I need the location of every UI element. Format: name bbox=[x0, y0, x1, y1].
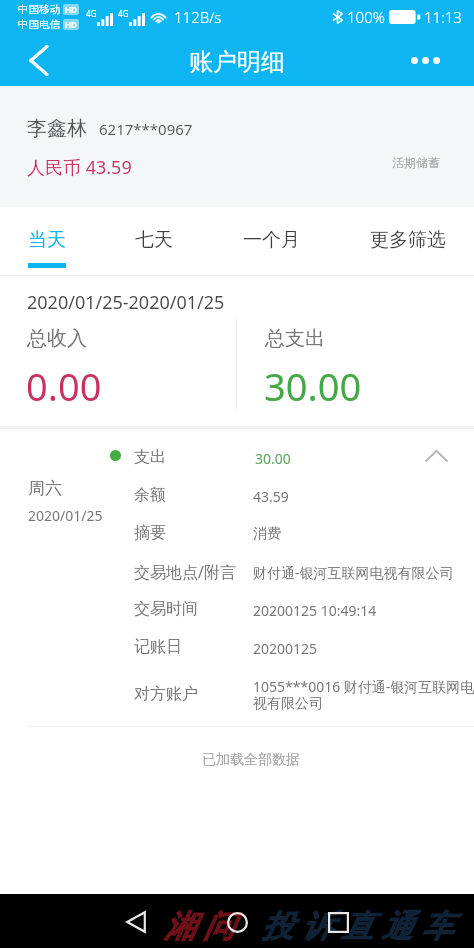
button[interactable]: Back bbox=[112, 898, 160, 946]
button[interactable]: More options bbox=[399, 34, 452, 86]
staticText: 投诉直通车 bbox=[257, 907, 457, 946]
staticText: 100% bbox=[347, 7, 385, 27]
staticText: 李鑫林 bbox=[27, 116, 87, 141]
staticText: 记账日 bbox=[134, 637, 182, 657]
staticText: 30.00 bbox=[255, 449, 291, 468]
staticText: 湘问 bbox=[160, 907, 238, 946]
button[interactable]: 一个月 bbox=[219, 207, 323, 276]
staticText: 20200125 10:49:14 bbox=[253, 601, 474, 620]
staticText: 0.00 bbox=[26, 360, 102, 412]
staticText: 112B/s bbox=[174, 7, 222, 27]
staticText: HD bbox=[65, 4, 77, 15]
staticText: 交易时间 bbox=[134, 599, 198, 619]
staticText: 总收入 bbox=[27, 326, 87, 351]
button[interactable]: 七天 bbox=[102, 207, 206, 276]
button[interactable]: Collapse bbox=[416, 438, 456, 474]
button[interactable] bbox=[0, 440, 474, 472]
staticText: 周六 bbox=[28, 478, 62, 499]
staticText: 人民币 43.59 bbox=[27, 155, 132, 180]
staticText: 43.59 bbox=[253, 487, 474, 506]
staticText: 已加载全部数据 bbox=[202, 751, 300, 769]
staticText: 财付通-银河互联网电视有限公司 bbox=[253, 563, 474, 582]
staticText: 更多筛选 bbox=[370, 228, 446, 252]
staticText: 20200125 bbox=[253, 639, 474, 658]
button[interactable]: 更多筛选 bbox=[356, 207, 460, 276]
staticText: 2020/01/25 bbox=[28, 506, 103, 525]
staticText: 2020/01/25-2020/01/25 bbox=[27, 290, 225, 315]
button[interactable]: 当天 bbox=[0, 207, 99, 276]
staticText: 总支出 bbox=[265, 326, 325, 351]
staticText: 支出 bbox=[134, 447, 166, 467]
staticText: 账户明细 bbox=[189, 47, 285, 77]
staticText: 4G bbox=[118, 8, 129, 19]
button[interactable]: Back bbox=[11, 34, 64, 86]
button[interactable]: Recent apps bbox=[314, 898, 362, 946]
staticText: 对方账户 bbox=[134, 684, 198, 704]
staticText: 11:13 bbox=[424, 7, 462, 27]
staticText: 摘要 bbox=[134, 523, 166, 543]
staticText: 当天 bbox=[28, 228, 66, 252]
staticText: 七天 bbox=[135, 228, 173, 252]
button[interactable]: Home bbox=[213, 898, 261, 946]
staticText: 活期储蓄 bbox=[392, 155, 440, 170]
staticText: 6217***0967 bbox=[99, 119, 193, 139]
staticText: 交易地点/附言 bbox=[134, 561, 236, 583]
staticText: HD bbox=[65, 19, 77, 30]
staticText: 30.00 bbox=[264, 360, 362, 412]
staticText: 中国移动 bbox=[18, 3, 60, 16]
staticText: 消费 bbox=[253, 525, 474, 543]
staticText: 1055***0016 财付通-银河互联网电视有限公司 bbox=[253, 677, 474, 712]
staticText: 一个月 bbox=[243, 228, 300, 252]
staticText: 余额 bbox=[134, 485, 166, 505]
staticText: 中国电信 bbox=[18, 18, 60, 31]
staticText: 4G bbox=[86, 8, 97, 19]
